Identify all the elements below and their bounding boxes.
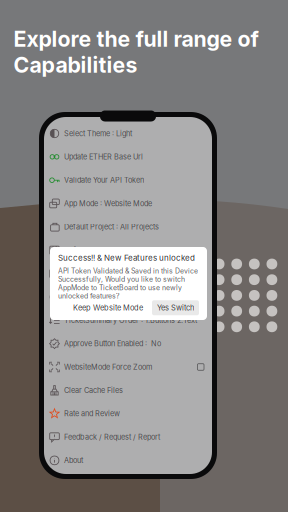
button[interactable]: Default Board : All Boards — [44, 239, 212, 262]
staticText: Ticket Layout : Compact — [64, 269, 145, 278]
button[interactable]: TicketSummary Order : 1.Buttons 2.Text — [44, 309, 212, 332]
button[interactable]: Rate and Review — [44, 402, 212, 425]
staticText: Select Theme : Light — [64, 129, 132, 138]
button[interactable]: Feedback / Request / Report — [44, 426, 212, 449]
staticText: WebsiteMode Force Zoom — [64, 363, 152, 371]
button[interactable]: Ticket Layout : Compact — [44, 262, 212, 285]
button[interactable]: Update ETHER Base Url — [44, 145, 212, 168]
button[interactable]: Yes Switch — [152, 300, 199, 315]
staticText: Feedback / Request / Report — [64, 433, 160, 441]
button[interactable]: Approve Button Enabled : No — [44, 332, 212, 355]
button[interactable]: About — [44, 449, 212, 472]
button[interactable]: Default Project : All Projects — [44, 215, 212, 238]
staticText: Success!! & New Features unlocked — [58, 253, 195, 263]
staticText: About — [64, 456, 83, 465]
staticText: Update ETHER Base Url — [64, 152, 143, 161]
staticText: TicketSummary Order : 1.Buttons 2.Text — [64, 316, 197, 325]
button[interactable]: WebsiteMode Force Zoom — [44, 355, 212, 378]
staticText: Explore the full range of Capabilities — [13, 26, 258, 78]
staticText: Clear Cache Files — [64, 386, 123, 395]
staticText: API Token Validated & Saved in this Devi… — [58, 267, 198, 300]
staticText: Rate and Review — [64, 409, 120, 418]
button[interactable]: App Mode : Website Mode — [44, 192, 212, 215]
button[interactable]: Keep Website Mode — [69, 300, 147, 315]
staticText: App Mode : Website Mode — [64, 199, 152, 208]
staticText: Approve Button Enabled : No — [64, 339, 161, 348]
staticText: Default Board : All Boards — [64, 246, 151, 255]
button[interactable]: Refresh Interval : 30 sec — [44, 285, 212, 308]
button[interactable]: Validate Your API Token — [44, 169, 212, 192]
staticText: Refresh Interval : 30 sec — [64, 292, 148, 301]
button[interactable]: Select Theme : Light — [44, 122, 212, 145]
staticText: Keep Website Mode — [73, 303, 143, 312]
button[interactable]: Clear Cache Files — [44, 379, 212, 402]
staticText: Default Project : All Projects — [64, 222, 159, 231]
staticText: Validate Your API Token — [64, 176, 144, 185]
staticText: Yes Switch — [157, 303, 194, 312]
